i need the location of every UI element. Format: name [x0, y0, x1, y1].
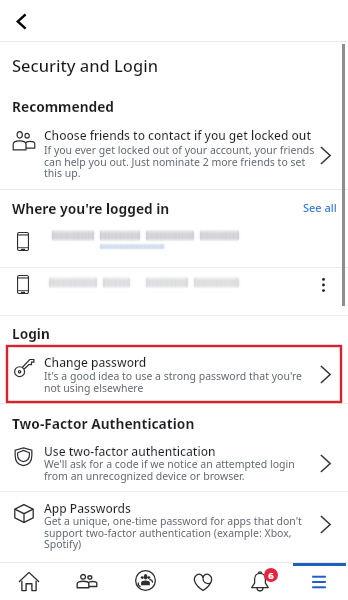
button[interactable]: [0, 492, 348, 554]
button[interactable]: Friends: [58, 563, 116, 600]
button[interactable]: Watch: [174, 563, 232, 600]
button[interactable]: Notifications: [232, 563, 290, 600]
button[interactable]: [0, 268, 348, 315]
button[interactable]: Groups: [116, 563, 174, 600]
staticText: Login: [12, 324, 50, 343]
staticText: It's a good idea to use a strong passwor…: [44, 369, 318, 395]
staticText: 6: [268, 569, 274, 582]
staticText: Two-Factor Authentication: [12, 414, 195, 433]
button[interactable]: Back: [2, 2, 40, 40]
staticText: Recommended: [12, 97, 115, 116]
staticText: Where you're logged in: [12, 199, 170, 218]
button[interactable]: [0, 435, 348, 491]
button[interactable]: More options: [312, 275, 334, 295]
staticText: Security and Login: [12, 54, 158, 76]
button[interactable]: Menu: [290, 563, 348, 600]
staticText: Choose friends to contact if you get loc…: [44, 127, 311, 143]
button[interactable]: See all: [303, 200, 337, 215]
staticText: Get a unique, one-time password for apps…: [44, 514, 318, 551]
button[interactable]: [0, 115, 348, 189]
staticText: Change password: [44, 354, 147, 370]
staticText: We'll ask for a code if we notice an att…: [44, 457, 318, 483]
button[interactable]: [0, 219, 348, 267]
staticText: Use two-factor authentication: [44, 443, 216, 459]
button[interactable]: [0, 346, 348, 403]
button[interactable]: Home: [0, 563, 58, 600]
staticText: If you ever get locked out of your accou…: [44, 143, 318, 180]
staticText: App Passwords: [44, 500, 131, 516]
